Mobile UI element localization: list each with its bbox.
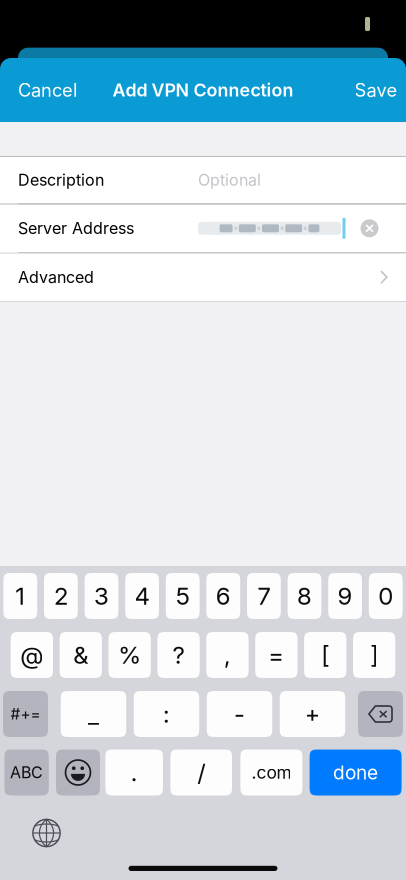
button[interactable]: % — [108, 632, 151, 678]
button[interactable]: done — [310, 749, 402, 795]
staticText: 3 — [94, 581, 109, 610]
button[interactable]: 8 — [288, 573, 321, 619]
staticText: [ — [321, 640, 329, 669]
staticText: ABC — [10, 763, 43, 782]
staticText: 7 — [257, 581, 270, 610]
staticText: Save — [354, 79, 397, 101]
staticText: .com — [251, 762, 291, 783]
staticText: & — [73, 640, 88, 669]
staticText: = — [268, 640, 284, 669]
staticText: , — [224, 640, 231, 669]
button[interactable]: ABC — [4, 749, 49, 795]
button[interactable]: Description — [0, 156, 406, 203]
staticText: 5 — [176, 581, 190, 610]
staticText: 1 — [15, 581, 25, 610]
staticText: : — [163, 699, 170, 728]
button[interactable]: / — [170, 749, 232, 795]
button[interactable]: 2 — [44, 573, 78, 619]
staticText: - — [234, 699, 245, 728]
staticText: 2 — [54, 581, 68, 610]
button[interactable]: _ — [61, 691, 126, 737]
button[interactable]: Emoji — [56, 749, 100, 795]
button[interactable]: . — [105, 749, 163, 795]
staticText: 9 — [338, 581, 353, 610]
staticText: Advanced — [18, 267, 94, 287]
button[interactable]: - — [207, 691, 272, 737]
button[interactable]: Switch keyboard — [32, 818, 61, 847]
button[interactable]: & — [60, 632, 102, 678]
staticText: #+= — [10, 705, 40, 723]
staticText: Description — [18, 170, 104, 190]
button[interactable]: Server Address — [0, 204, 406, 252]
button[interactable]: 7 — [247, 573, 281, 619]
button[interactable]: 0 — [369, 573, 403, 619]
staticText: ] — [370, 640, 378, 669]
staticText: _ — [88, 699, 99, 728]
staticText: 8 — [297, 581, 312, 610]
staticText: Cancel — [18, 79, 77, 101]
button[interactable]: = — [255, 632, 297, 678]
button[interactable]: 9 — [328, 573, 362, 619]
staticText: 4 — [135, 581, 150, 610]
staticText: + — [304, 699, 320, 728]
staticText: Server Address — [18, 219, 134, 238]
staticText: @ — [20, 640, 43, 669]
staticText: 6 — [216, 581, 231, 610]
button[interactable]: , — [206, 632, 249, 678]
button[interactable]: + — [280, 691, 345, 737]
button[interactable]: ] — [353, 632, 395, 678]
button[interactable]: 1 — [3, 573, 37, 619]
button[interactable]: @ — [11, 632, 53, 678]
button[interactable]: 4 — [125, 573, 159, 619]
button[interactable]: : — [134, 691, 199, 737]
button[interactable]: #+= — [3, 691, 48, 737]
staticText: Optional — [198, 170, 261, 190]
button[interactable]: 6 — [206, 573, 240, 619]
button[interactable]: Save — [340, 58, 406, 122]
button[interactable]: [ — [304, 632, 346, 678]
staticText: % — [118, 640, 141, 669]
staticText: . — [131, 758, 138, 787]
staticText: 0 — [378, 581, 393, 610]
button[interactable]: Delete — [358, 691, 403, 737]
button[interactable]: .com — [240, 749, 302, 795]
button[interactable]: ? — [157, 632, 200, 678]
staticText: Add VPN Connection — [112, 79, 293, 101]
button[interactable]: Advanced — [0, 253, 406, 301]
button[interactable]: 5 — [166, 573, 200, 619]
staticText: / — [197, 758, 205, 787]
button[interactable]: Cancel — [0, 58, 91, 122]
staticText: ? — [172, 640, 184, 669]
staticText: done — [333, 761, 378, 784]
button[interactable]: 3 — [85, 573, 118, 619]
